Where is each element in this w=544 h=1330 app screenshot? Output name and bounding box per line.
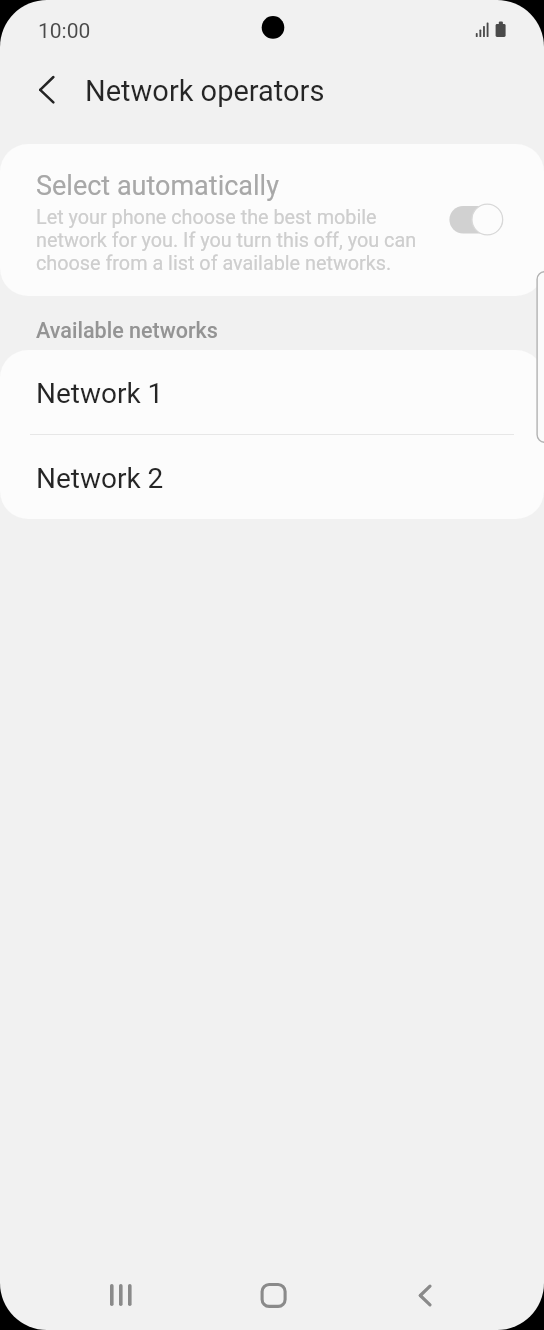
button[interactable]: Back — [390, 1260, 460, 1330]
button[interactable]: Network 2 — [0, 435, 544, 519]
staticText: Select automatically — [36, 170, 279, 202]
staticText: Let your phone choose the best mobile ne… — [36, 206, 417, 275]
staticText: Network operators — [85, 74, 325, 108]
staticText: 10:00 — [38, 19, 91, 44]
staticText: Network 1 — [36, 377, 164, 410]
staticText: Network 2 — [36, 462, 164, 495]
button[interactable]: Select automatically — [0, 144, 544, 296]
staticText: Available networks — [36, 318, 218, 343]
button[interactable]: Network 1 — [0, 350, 544, 434]
button[interactable]: Home — [237, 1260, 307, 1330]
button[interactable]: Recent apps — [86, 1260, 156, 1330]
button[interactable]: Navigate up — [14, 64, 66, 116]
button[interactable]: Select automatically — [449, 200, 503, 240]
